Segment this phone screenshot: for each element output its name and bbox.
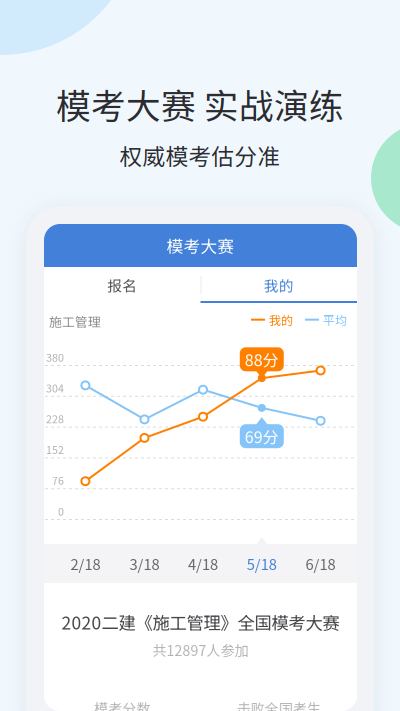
staticText: 共12897人参加: [152, 640, 248, 660]
staticText: 5/18: [247, 553, 277, 574]
staticText: 2/18: [70, 553, 100, 574]
button[interactable]: 6/18: [296, 544, 346, 583]
staticText: 报名: [107, 274, 137, 296]
staticText: 380: [46, 349, 64, 365]
button[interactable]: 2/18: [60, 544, 110, 583]
button[interactable]: 报名: [44, 267, 200, 303]
staticText: 76: [52, 472, 64, 488]
staticText: 模考大赛 实战演练: [56, 79, 344, 129]
button[interactable]: 5/18: [237, 544, 287, 583]
button[interactable]: 4/18: [178, 544, 228, 583]
staticText: 平均: [323, 311, 347, 328]
staticText: 3/18: [129, 553, 159, 574]
staticText: 6/18: [306, 553, 336, 574]
staticText: 228: [46, 411, 64, 426]
staticText: 模考大赛: [166, 233, 234, 257]
button[interactable]: 3/18: [119, 544, 169, 583]
staticText: 4/18: [188, 553, 218, 574]
staticText: 0: [58, 503, 64, 519]
staticText: 152: [46, 442, 64, 457]
staticText: 击败全国考生: [237, 698, 321, 711]
staticText: 304: [46, 380, 64, 395]
staticText: 88分: [245, 348, 279, 371]
staticText: 我的: [269, 311, 293, 328]
staticText: 模考分数: [94, 698, 150, 711]
staticText: 施工管理: [49, 312, 101, 330]
staticText: 我的: [264, 274, 294, 296]
staticText: 权威模考估分准: [119, 139, 280, 171]
staticText: 69分: [245, 425, 279, 448]
button[interactable]: 我的: [200, 267, 357, 303]
staticText: 2020二建《施工管理》全国模考大赛: [61, 609, 339, 635]
